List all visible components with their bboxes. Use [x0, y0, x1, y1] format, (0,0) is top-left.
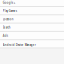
button[interactable]: Play Games	[0, 9, 64, 17]
button[interactable]: Search	[0, 26, 64, 34]
button[interactable]: Ads	[0, 34, 64, 42]
staticText: Google+	[3, 1, 16, 4]
staticText: Ads	[3, 34, 8, 37]
staticText: Search	[3, 26, 11, 29]
staticText: Play Games	[3, 9, 17, 13]
button[interactable]: Google+	[0, 1, 64, 9]
staticText: Android Device Manager	[3, 43, 36, 47]
button[interactable]: Location	[0, 17, 64, 26]
staticText: Location	[3, 17, 14, 21]
button[interactable]: Android Device Manager	[0, 43, 64, 51]
